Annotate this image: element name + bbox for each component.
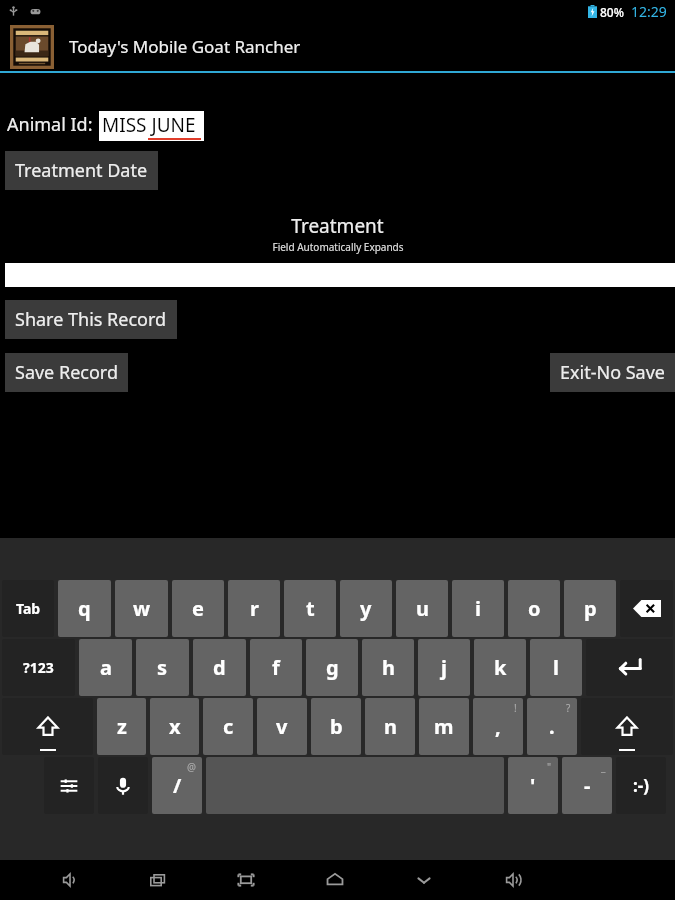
staticText: k — [494, 654, 507, 681]
button[interactable]: MISS JUNE — [99, 111, 204, 141]
button[interactable]: b — [311, 698, 361, 755]
staticText: 80% — [600, 4, 624, 20]
staticText: / — [173, 772, 182, 799]
button[interactable]: c — [203, 698, 253, 755]
button[interactable]: Keyboard settings — [44, 757, 94, 814]
button[interactable]: Save Record — [5, 353, 128, 392]
button[interactable]: x — [150, 698, 199, 755]
staticText: z — [117, 713, 127, 740]
staticText: MISS JUNE — [102, 112, 196, 138]
staticText: l — [553, 654, 559, 681]
staticText: j — [441, 654, 447, 681]
button[interactable]: y — [340, 580, 392, 637]
button[interactable]: n — [365, 698, 415, 755]
button[interactable]: z — [97, 698, 146, 755]
button[interactable]: p — [564, 580, 616, 637]
staticText: . — [549, 713, 555, 740]
staticText: m — [434, 713, 454, 740]
staticText: Exit-No Save — [560, 360, 665, 385]
button[interactable]: w — [115, 580, 168, 637]
staticText: u — [416, 595, 429, 622]
button[interactable]: t — [284, 580, 336, 637]
staticText: Save Record — [15, 360, 118, 385]
staticText: :-) — [633, 774, 649, 797]
button[interactable]: _ — [562, 757, 612, 814]
button[interactable]: q — [58, 580, 111, 637]
staticText: ' — [530, 772, 536, 799]
staticText: e — [192, 595, 204, 622]
staticText: i — [475, 595, 481, 622]
button[interactable]: Enter — [586, 639, 673, 696]
button[interactable]: o — [508, 580, 560, 637]
staticText: d — [213, 654, 226, 681]
staticText: , — [495, 713, 501, 740]
staticText: ! — [514, 701, 517, 715]
button[interactable]: Share This Record — [5, 300, 177, 339]
staticText: v — [276, 713, 288, 740]
staticText: g — [326, 654, 339, 681]
staticText: p — [584, 595, 597, 622]
staticText: x — [169, 713, 181, 740]
staticText: ? — [566, 701, 571, 715]
button[interactable]: Hide keyboard — [402, 860, 446, 900]
button[interactable]: u — [396, 580, 448, 637]
button[interactable]: Shift — [2, 698, 93, 755]
button[interactable]: i — [452, 580, 504, 637]
button[interactable]: k — [474, 639, 526, 696]
button[interactable]: l — [530, 639, 582, 696]
button[interactable]: e — [172, 580, 224, 637]
button[interactable]: j — [418, 639, 470, 696]
button[interactable]: Backspace — [620, 580, 673, 637]
button[interactable]: h — [362, 639, 414, 696]
staticText: c — [223, 713, 234, 740]
staticText: Today's Mobile Goat Rancher — [69, 35, 301, 58]
button[interactable]: ? — [527, 698, 577, 755]
staticText: q — [78, 595, 91, 622]
button[interactable]: Volume up — [491, 860, 535, 900]
staticText: o — [528, 595, 541, 622]
button[interactable]: s — [136, 639, 189, 696]
button[interactable]: Volume down — [48, 860, 92, 900]
staticText: n — [384, 713, 397, 740]
staticText: Share This Record — [15, 307, 167, 332]
button[interactable]: Shift — [581, 698, 673, 755]
staticText: t — [306, 595, 315, 622]
button[interactable]: Recent apps — [136, 860, 180, 900]
button[interactable]: m — [419, 698, 469, 755]
staticText: f — [272, 654, 280, 681]
staticText: h — [382, 654, 395, 681]
button[interactable]: Exit-No Save — [550, 353, 675, 392]
staticText: Treatment Date — [15, 158, 148, 183]
staticText: _ — [601, 760, 606, 774]
staticText: Field Automatically Expands — [272, 240, 404, 254]
button[interactable]: d — [193, 639, 246, 696]
button[interactable]: @ — [152, 757, 202, 814]
staticText: a — [100, 654, 112, 681]
button[interactable]: Treatment Date — [5, 151, 158, 190]
button[interactable]: ?123 — [2, 639, 75, 696]
staticText: s — [157, 654, 168, 681]
staticText: 12:29 — [631, 2, 667, 21]
staticText: Treatment — [291, 213, 384, 239]
staticText: Animal Id: — [7, 112, 93, 137]
button[interactable]: g — [306, 639, 358, 696]
button[interactable]: a — [79, 639, 132, 696]
button[interactable]: Screenshot — [224, 860, 268, 900]
button[interactable]: v — [257, 698, 307, 755]
staticText: Tab — [16, 599, 41, 618]
button[interactable]: Home — [313, 860, 357, 900]
staticText: - — [584, 772, 591, 799]
staticText: ?123 — [23, 658, 54, 677]
staticText: @ — [187, 760, 196, 774]
button[interactable]: :-) — [616, 757, 666, 814]
button[interactable]: r — [228, 580, 280, 637]
button[interactable]: ! — [473, 698, 523, 755]
staticText: " — [547, 760, 552, 774]
button[interactable]: f — [250, 639, 302, 696]
button[interactable]: Tab — [2, 580, 54, 637]
button[interactable]: " — [508, 757, 558, 814]
staticText: y — [360, 595, 372, 622]
button[interactable]: Voice input — [98, 757, 148, 814]
